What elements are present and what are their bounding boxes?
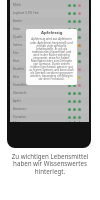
button[interactable]: Bananen (10, 105, 89, 113)
staticText: Quark (13, 35, 23, 39)
staticText: Butter (13, 19, 23, 23)
staticText: Zwiebeln (13, 91, 27, 95)
button[interactable]: Tomaten (10, 113, 89, 121)
button[interactable]: Sahne (10, 41, 89, 49)
staticText: Tomaten (13, 115, 27, 119)
button[interactable]: Milch (10, 1, 89, 9)
button[interactable]: Äpfel (10, 97, 89, 105)
staticText: Äpfel (13, 99, 21, 103)
button[interactable]: Kartoffeln (10, 81, 89, 89)
staticText: Reis (13, 75, 20, 79)
staticText: Eier (13, 51, 19, 55)
button[interactable]: Eier (10, 49, 89, 57)
staticText: Kartoffeln (13, 83, 28, 87)
staticText: Milch (13, 3, 22, 7)
button[interactable]: Nudeln (10, 65, 89, 73)
staticText: Apfelessig wird aus Apfelwein oder Apfel… (29, 37, 74, 81)
staticText: Sahne (13, 43, 23, 47)
button[interactable]: Möhren (10, 121, 89, 122)
button[interactable]: Reis (10, 73, 89, 81)
staticText: Möhren (13, 121, 25, 122)
button[interactable]: Zwiebeln (10, 89, 89, 97)
staticText: Joghurt 3,5% Fett (13, 11, 39, 15)
staticText: Apfelessig (41, 30, 63, 36)
button[interactable]: Quark (10, 33, 89, 41)
staticText: Zu wichtigen Lebensmittel haben wir Wiss… (0, 152, 100, 176)
button[interactable]: Käse (10, 25, 89, 33)
button[interactable]: Joghurt 3,5% Fett (10, 9, 89, 17)
button[interactable]: Butter (10, 17, 89, 25)
button[interactable]: Brot (10, 57, 89, 65)
staticText: Brot (13, 59, 20, 63)
staticText: Käse (13, 27, 21, 31)
staticText: Bananen (13, 107, 27, 111)
staticText: Nudeln (13, 67, 24, 71)
